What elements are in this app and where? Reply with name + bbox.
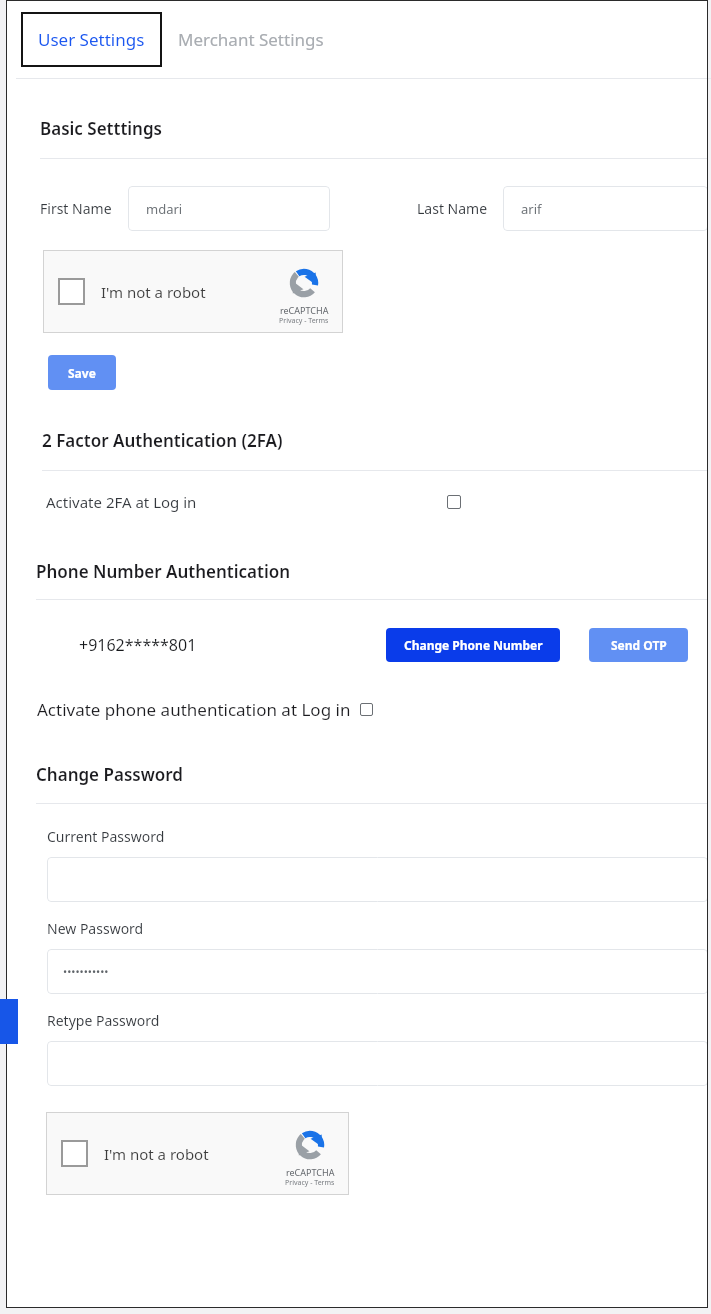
button[interactable]: Activate 2FA at Log in [447,495,461,509]
staticText: Change Password [36,763,183,786]
button[interactable]: User Settings [21,12,162,67]
staticText: Retype Password [47,1011,160,1030]
other: I'm not a robot checkbox [58,278,85,305]
staticText: Privacy - Terms [285,1178,335,1188]
button[interactable]: Merchant Settings [172,12,330,67]
staticText: Last Name [417,199,488,218]
button[interactable]: Change Phone Number [386,628,560,662]
staticText: I'm not a robot [101,282,206,302]
staticText: Change Phone Number [404,637,543,653]
staticText: I'm not a robot [104,1144,209,1164]
button[interactable]: mdari [128,186,330,231]
staticText: Save [68,365,96,381]
staticText: Merchant Settings [178,28,324,51]
button[interactable]: arif [503,186,708,231]
staticText: New Password [47,919,144,938]
button[interactable] [47,857,708,902]
staticText: Privacy - Terms [279,316,329,326]
staticText: ••••••••••• [63,964,109,979]
button[interactable]: I'm not a robot checkbox [43,250,343,333]
button[interactable]: Activate phone authentication at Log in [360,703,373,716]
staticText: Send OTP [611,637,667,653]
staticText: +9162*****801 [79,634,197,656]
staticText: First Name [40,199,112,218]
other: I'm not a robot checkbox [61,1140,88,1167]
staticText: Current Password [47,827,165,846]
staticText: 2 Factor Authentication (2FA) [42,429,283,452]
staticText: User Settings [38,28,145,51]
staticText: Basic Setttings [40,117,162,140]
button[interactable]: I'm not a robot checkbox [46,1112,349,1195]
staticText: Phone Number Authentication [36,560,291,583]
staticText: mdari [146,200,183,218]
button[interactable]: Save [48,355,116,390]
staticText: Activate phone authentication at Log in [37,698,351,721]
button[interactable]: Send OTP [589,628,688,662]
button[interactable] [47,1041,708,1086]
staticText: arif [521,200,542,218]
staticText: reCAPTCHA [280,304,329,316]
button[interactable]: ••••••••••• [47,949,708,994]
staticText: Activate 2FA at Log in [46,492,197,512]
staticText: reCAPTCHA [286,1166,335,1178]
